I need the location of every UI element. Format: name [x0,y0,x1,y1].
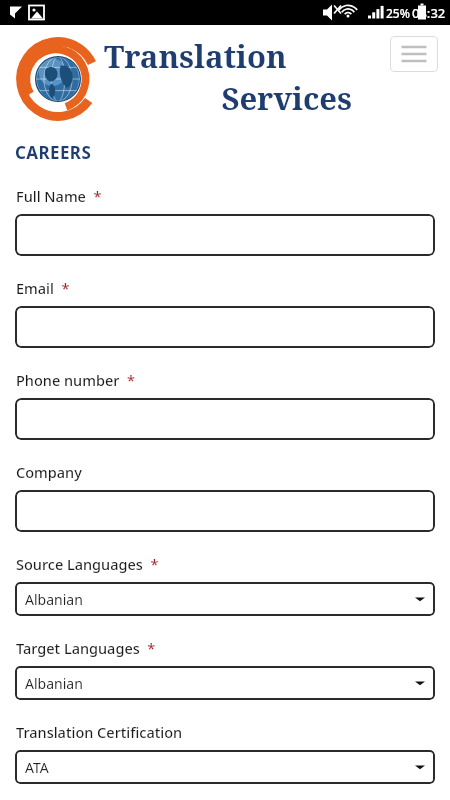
staticText: Source Languages * [16,554,159,574]
staticText: Albanian [25,674,83,693]
staticText: Target Languages * [16,638,156,658]
staticText: Translation Certification [16,722,183,742]
button[interactable] [15,214,435,256]
button[interactable]: Open menu [390,36,438,72]
staticText: Phone number * [16,370,135,390]
staticText: 08:32 [412,4,446,22]
staticText: Albanian [25,590,83,609]
staticText: Email * [16,278,70,298]
button[interactable] [15,490,435,532]
button[interactable]: ATA [15,750,435,784]
staticText: Company [16,462,82,482]
staticText: Translation [104,35,287,77]
staticText: Full Name * [16,186,102,206]
staticText: 25% [386,5,410,21]
button[interactable]: Express Language Solutions logo [6,27,110,131]
staticText: ATA [25,758,49,777]
button[interactable] [15,306,435,348]
staticText: Services [104,77,352,119]
button[interactable]: Albanian [15,582,435,616]
staticText: CAREERS [15,141,92,164]
button[interactable] [15,398,435,440]
button[interactable]: Albanian [15,666,435,700]
